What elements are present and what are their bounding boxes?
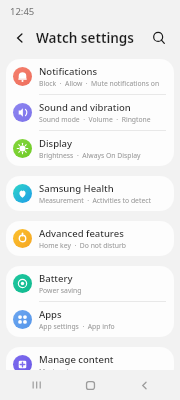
button[interactable]: Apps — [6, 302, 174, 337]
button[interactable]: Battery — [6, 266, 174, 301]
staticText: Battery — [39, 272, 73, 285]
staticText: Measurement · Activities to detect — [39, 196, 151, 205]
staticText: Apps — [39, 308, 62, 321]
staticText: Home key · Do not disturb — [39, 241, 126, 250]
staticText: Watch settings — [36, 29, 134, 47]
staticText: Display — [39, 137, 73, 150]
button[interactable]: Recents — [20, 370, 54, 400]
button[interactable]: Home — [73, 370, 107, 400]
staticText: Notifications — [39, 65, 98, 78]
button[interactable]: Back — [10, 28, 30, 48]
button[interactable]: Advanced features — [6, 221, 174, 256]
button[interactable]: Back — [127, 370, 161, 400]
button[interactable]: Samsung Health — [6, 176, 174, 211]
staticText: App settings · App info — [39, 322, 115, 331]
button[interactable]: Sound and vibration — [6, 95, 174, 130]
staticText: Samsung Health — [39, 182, 114, 195]
staticText: 12:45 — [10, 5, 35, 18]
staticText: Advanced features — [39, 227, 124, 240]
staticText: Manage content — [39, 353, 114, 366]
staticText: Sound and vibration — [39, 101, 131, 114]
staticText: Sound mode · Volume · Ringtone — [39, 115, 151, 124]
button[interactable]: Manage content — [6, 347, 174, 382]
staticText: Power saving — [39, 286, 82, 295]
staticText: Music · image — [39, 367, 87, 376]
staticText: Block · Allow · Mute notifications on ph… — [39, 79, 166, 88]
button[interactable]: Notifications — [6, 59, 174, 94]
button[interactable]: Search — [148, 27, 170, 49]
button[interactable]: Display — [6, 131, 174, 166]
staticText: Brightness · Always On Display — [39, 151, 141, 160]
